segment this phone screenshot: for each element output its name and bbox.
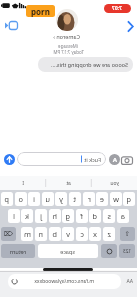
button[interactable]: 123 [119,244,135,258]
staticText: ⌫ [3,230,13,238]
staticText: space [60,248,75,255]
button[interactable]: y [55,192,67,206]
button[interactable]: d [89,209,101,223]
button[interactable] [127,21,134,32]
button[interactable]: ⇧ [120,227,135,241]
button[interactable]: porn [26,5,55,17]
button[interactable]: m [21,227,33,241]
staticText: l [13,211,15,221]
staticText: z [107,229,111,239]
button[interactable] [56,9,78,31]
button[interactable]: return [1,244,35,258]
button[interactable] [11,278,18,285]
staticText: e [99,194,104,204]
button[interactable]: a [117,209,129,223]
button[interactable]: m.fans.com/aylawoodxxx [8,274,121,289]
button[interactable]: k [21,209,33,223]
button[interactable]: r [83,192,95,206]
staticText: y [59,194,63,204]
button[interactable]: Fuck it [17,152,106,166]
staticText: f [80,211,83,221]
button[interactable]: i [28,192,40,206]
button[interactable]: z [103,227,115,241]
button[interactable]: g [62,209,74,223]
button[interactable]: e [96,192,108,206]
button[interactable]: u [42,192,54,206]
button[interactable]: o [15,192,27,206]
button[interactable]: p [1,192,13,206]
button[interactable] [121,155,133,165]
button[interactable]: ⌫ [1,227,16,241]
staticText: g [65,211,70,221]
staticText: d [92,211,97,221]
button[interactable]: 7:07 [104,4,131,13]
staticText: porn [31,6,50,17]
staticText: m.fans.com/aylawoodxxx [34,278,94,285]
staticText: w [113,194,119,204]
staticText: ⇧ [124,230,130,238]
staticText: v [66,229,70,239]
staticText: r [87,194,91,204]
button[interactable]: AA [126,278,133,285]
staticText: o [18,194,23,204]
button[interactable]: I [0,176,46,190]
staticText: i [33,194,35,204]
staticText: k [24,211,29,221]
button[interactable]: Soooo are we dropping this.... [38,57,133,72]
button[interactable] [4,154,15,165]
staticText: m [23,229,31,239]
button[interactable]: t [69,192,81,206]
button[interactable]: at [46,176,92,190]
staticText: n [38,229,43,239]
button[interactable]: b [49,227,61,241]
staticText: Soooo are we dropping this.... [51,61,128,68]
staticText: Cameron › [53,33,80,40]
staticText: x [93,229,97,239]
staticText: I [22,180,24,187]
button[interactable]: j [35,209,47,223]
staticText: at [66,180,71,187]
button[interactable]: w [110,192,122,206]
button[interactable]: f [76,209,88,223]
button[interactable]: h [49,209,61,223]
staticText: Fuck it [84,156,101,163]
staticText: q [126,194,131,204]
staticText: you [110,180,119,187]
staticText: h [52,211,57,221]
button[interactable]: l [8,209,20,223]
staticText: A [112,156,117,164]
button[interactable]: x [89,227,101,241]
staticText: j [40,211,42,221]
button[interactable]: space [38,244,98,258]
staticText: 123 [123,248,131,254]
button[interactable]: q [123,192,135,206]
button[interactable]: you [92,176,137,190]
button[interactable]: n [35,227,47,241]
staticText: u [45,194,50,204]
staticText: Today 7:17 PM [53,49,84,55]
button[interactable]: s [103,209,115,223]
staticText: t [73,194,76,204]
button[interactable]: c [76,227,88,241]
staticText: s [107,211,111,221]
button[interactable]: A [109,154,120,165]
staticText: 7:07 [112,5,122,12]
button[interactable]: v [62,227,74,241]
staticText: c [80,229,84,239]
button[interactable] [101,244,117,258]
button[interactable] [4,21,18,30]
staticText: return [9,248,26,255]
staticText: a [120,211,125,221]
staticText: iMessage [58,43,78,49]
staticText: p [4,194,9,204]
staticText: b [52,229,57,239]
